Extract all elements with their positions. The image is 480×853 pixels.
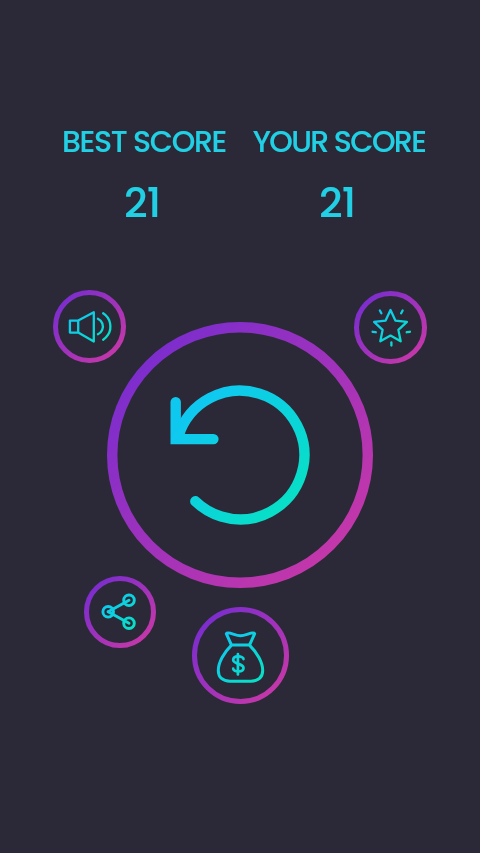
button[interactable]: Shop: [192, 607, 289, 704]
staticText: 21: [27, 174, 257, 236]
button[interactable]: Sound: [53, 290, 126, 363]
button[interactable]: Rate us: [354, 291, 427, 364]
staticText: 21: [222, 174, 452, 236]
staticText: YOUR SCORE: [224, 121, 454, 166]
button[interactable]: Share: [84, 576, 156, 648]
staticText: BEST SCORE: [29, 121, 259, 166]
button[interactable]: Restart game: [107, 322, 373, 588]
